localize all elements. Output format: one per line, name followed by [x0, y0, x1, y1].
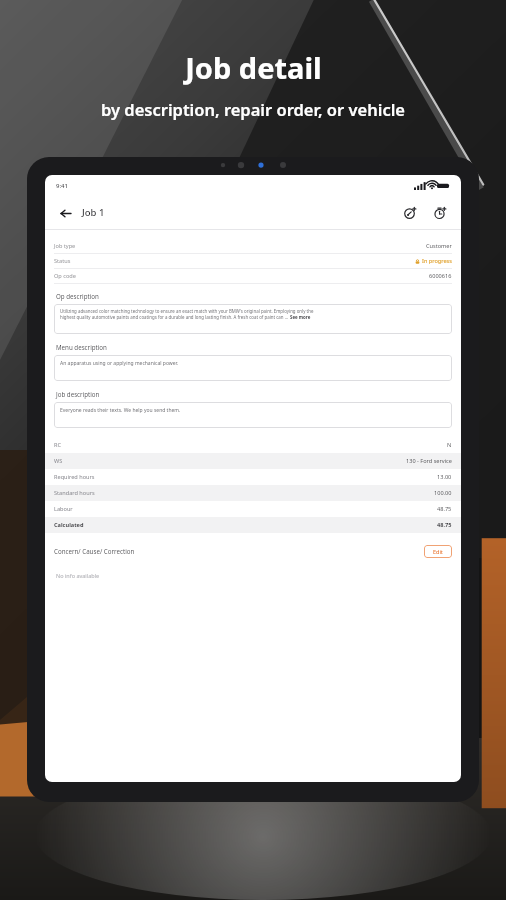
button[interactable]: Standard hours	[45, 485, 461, 501]
staticText: Labour	[54, 505, 73, 513]
staticText: Menu description	[56, 343, 107, 351]
button[interactable]: Op code	[54, 269, 452, 283]
staticText: Op description	[56, 292, 99, 300]
staticText: 6000616	[429, 272, 452, 280]
staticText: highest quality automotive paints and co…	[60, 314, 290, 320]
staticText: Required hours	[54, 473, 95, 481]
staticText: 48.75	[437, 505, 452, 513]
staticText: by description, repair order, or vehicle	[101, 98, 405, 120]
button[interactable]: Add vehicle	[400, 203, 420, 223]
staticText: Op code	[54, 272, 76, 280]
staticText: Job 1	[82, 206, 105, 219]
staticText: Edit	[433, 548, 443, 555]
button[interactable]: Back	[56, 204, 74, 222]
staticText: Job type	[54, 242, 76, 250]
staticText: An apparatus using or applying mechanica…	[60, 360, 179, 367]
button[interactable]: Edit	[424, 545, 452, 558]
staticText: Everyone reads their texts. We help you …	[60, 407, 181, 414]
staticText: Status	[54, 257, 71, 265]
staticText: Job description	[56, 390, 100, 398]
button[interactable]: WS	[45, 453, 461, 469]
button[interactable]: Status	[54, 254, 452, 268]
staticText: Concern/ Cause/ Correction	[54, 547, 135, 555]
button[interactable]: Job type	[54, 239, 452, 253]
staticText: Job detail	[185, 48, 322, 87]
staticText: In progress	[422, 257, 452, 265]
staticText: No info available	[56, 572, 100, 579]
button[interactable]: Labour	[45, 501, 461, 517]
staticText: 130 - Ford service	[406, 457, 452, 465]
staticText: WS	[54, 457, 63, 465]
staticText: Customer	[426, 242, 452, 250]
button[interactable]: Required hours	[45, 469, 461, 485]
staticText: 9:41	[56, 182, 68, 190]
staticText: 13.00	[437, 473, 452, 481]
staticText: See more	[290, 314, 311, 320]
staticText: Standard hours	[54, 489, 95, 497]
staticText: Calculated	[54, 521, 84, 529]
staticText: RC	[54, 441, 62, 449]
staticText: 100.00	[434, 489, 452, 497]
staticText: N	[447, 441, 452, 449]
button[interactable]: Add timer	[430, 203, 450, 223]
staticText: 48.75	[437, 521, 452, 529]
button[interactable]: Calculated	[45, 517, 461, 533]
staticText: Utilizing advanced color matching techno…	[60, 308, 314, 314]
button[interactable]: RC	[45, 437, 461, 453]
